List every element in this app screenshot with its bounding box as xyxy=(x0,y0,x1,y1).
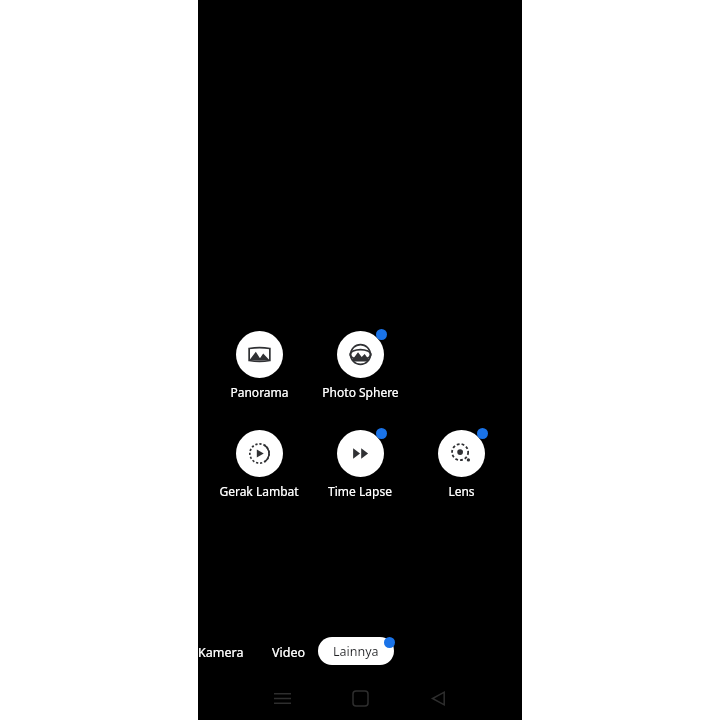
staticText: Video xyxy=(272,644,306,661)
button[interactable]: Back xyxy=(418,678,458,718)
button[interactable]: Photo Sphere xyxy=(308,325,412,400)
staticText: Kamera xyxy=(198,644,244,661)
staticText: Panorama xyxy=(230,384,289,400)
staticText: Lainnya xyxy=(333,643,379,660)
button[interactable]: Gerak Lambat xyxy=(207,424,311,499)
staticText: Time Lapse xyxy=(328,483,392,499)
button[interactable]: Recent apps xyxy=(262,678,302,718)
button[interactable]: Lainnya xyxy=(318,637,394,665)
staticText: Photo Sphere xyxy=(322,384,399,400)
button[interactable]: Panorama xyxy=(207,325,311,400)
button[interactable]: Home xyxy=(340,678,380,718)
button[interactable]: Lens xyxy=(409,424,513,499)
button[interactable]: Time Lapse xyxy=(308,424,412,499)
staticText: Gerak Lambat xyxy=(219,483,299,499)
button[interactable]: Kamera xyxy=(186,638,256,667)
button[interactable]: Video xyxy=(260,638,318,667)
staticText: Lens xyxy=(448,483,475,499)
